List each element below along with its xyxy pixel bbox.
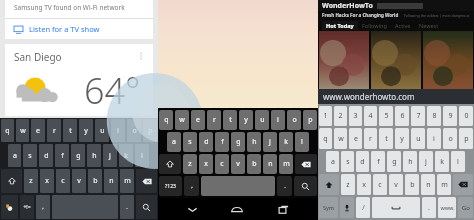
button[interactable]: Delete (136, 169, 157, 193)
button[interactable]: x (40, 169, 54, 193)
button[interactable]: j (103, 144, 117, 167)
button[interactable]: 9 (443, 106, 457, 126)
button[interactable]: g (71, 144, 85, 167)
button[interactable]: c (56, 169, 70, 193)
button[interactable]: Home (226, 198, 248, 220)
button[interactable]: Samsung TV found on Wi-Fi network (5, 0, 153, 39)
button[interactable]: Shift (319, 174, 339, 195)
button[interactable]: p (303, 110, 317, 130)
button[interactable]: More options (135, 50, 147, 62)
button[interactable]: Delete (295, 154, 317, 174)
button[interactable]: x (199, 154, 213, 174)
button[interactable]: Hide keyboard (181, 198, 203, 220)
button[interactable]: www. (438, 197, 456, 218)
button[interactable]: 0 (459, 106, 473, 126)
button[interactable]: t (379, 128, 393, 149)
button[interactable]: Go (458, 197, 473, 218)
button[interactable]: v (389, 174, 403, 195)
button[interactable]: d (199, 132, 213, 152)
button[interactable]: k (279, 132, 293, 152)
button[interactable]: w (334, 128, 347, 149)
button[interactable]: t (63, 119, 77, 142)
button[interactable]: Sym (319, 197, 338, 218)
button[interactable]: 1 (319, 106, 332, 126)
button[interactable]: Shift (1, 169, 22, 193)
button[interactable]: s (23, 144, 37, 167)
button[interactable]: , (36, 195, 50, 219)
button[interactable]: San Diego (5, 44, 153, 116)
button[interactable]: h (403, 151, 417, 172)
button[interactable]: z (341, 174, 355, 195)
button[interactable]: w (16, 119, 29, 142)
button[interactable]: x (357, 174, 371, 195)
button[interactable]: q (159, 110, 173, 130)
button[interactable]: u (411, 128, 425, 149)
button[interactable]: 6 (395, 106, 409, 126)
button[interactable]: d (356, 151, 369, 172)
button[interactable]: f (55, 144, 69, 167)
button[interactable]: u (95, 119, 109, 142)
button[interactable]: g (387, 151, 401, 172)
button[interactable]: i (427, 128, 441, 149)
button[interactable]: . (120, 195, 134, 219)
button[interactable]: o (443, 128, 457, 149)
button[interactable]: n (263, 154, 277, 174)
button[interactable]: www.wonderhowto.com (318, 89, 474, 104)
button[interactable]: Newest (419, 22, 439, 29)
button[interactable]: r (364, 128, 377, 149)
button[interactable]: i (271, 110, 285, 130)
button[interactable]: Voice input (340, 197, 354, 218)
button[interactable]: k (119, 144, 133, 167)
button[interactable]: m (437, 174, 451, 195)
button[interactable]: v (72, 169, 86, 193)
button[interactable]: p (143, 119, 157, 142)
button[interactable]: w (175, 110, 189, 130)
button[interactable]: Recents (272, 198, 294, 220)
button[interactable]: Search (136, 195, 157, 219)
button[interactable]: b (405, 174, 419, 195)
button[interactable]: 2 (334, 106, 347, 126)
button[interactable]: 8 (427, 106, 441, 126)
button[interactable]: z (24, 169, 38, 193)
button[interactable]: f (371, 151, 385, 172)
button[interactable]: Following (362, 22, 387, 29)
button[interactable]: m (279, 154, 293, 174)
button[interactable]: y (79, 119, 93, 142)
button[interactable]: a (167, 132, 181, 152)
button[interactable]: 3 (349, 106, 362, 126)
button[interactable]: Handwriting (1, 195, 18, 219)
button[interactable]: j (263, 132, 277, 152)
button[interactable]: y (395, 128, 409, 149)
button[interactable]: a (8, 144, 21, 167)
button[interactable]: n (421, 174, 435, 195)
button[interactable]: 4 (364, 106, 377, 126)
button[interactable]: Delete (453, 174, 473, 195)
button[interactable]: r (47, 119, 61, 142)
button[interactable]: g (231, 132, 245, 152)
button[interactable]: c (215, 154, 229, 174)
button[interactable]: t (223, 110, 237, 130)
button[interactable]: 5 (379, 106, 393, 126)
button[interactable]: z (183, 154, 197, 174)
button[interactable]: l (135, 144, 149, 167)
button[interactable]: Active (395, 22, 411, 29)
button[interactable]: v (231, 154, 245, 174)
button[interactable]: Listen for a TV show (5, 19, 153, 39)
button[interactable]: n (104, 169, 118, 193)
button[interactable]: d (39, 144, 53, 167)
button[interactable]: f (215, 132, 229, 152)
button[interactable]: +!= (20, 195, 34, 219)
button[interactable]: r (207, 110, 221, 130)
button[interactable] (371, 31, 421, 89)
button[interactable]: b (247, 154, 261, 174)
button[interactable]: o (287, 110, 301, 130)
button[interactable]: h (87, 144, 101, 167)
button[interactable]: Space (372, 197, 420, 218)
button[interactable]: i (111, 119, 125, 142)
button[interactable]: l (295, 132, 309, 152)
button[interactable]: e (349, 128, 362, 149)
button[interactable] (319, 31, 369, 89)
button[interactable]: k (435, 151, 449, 172)
